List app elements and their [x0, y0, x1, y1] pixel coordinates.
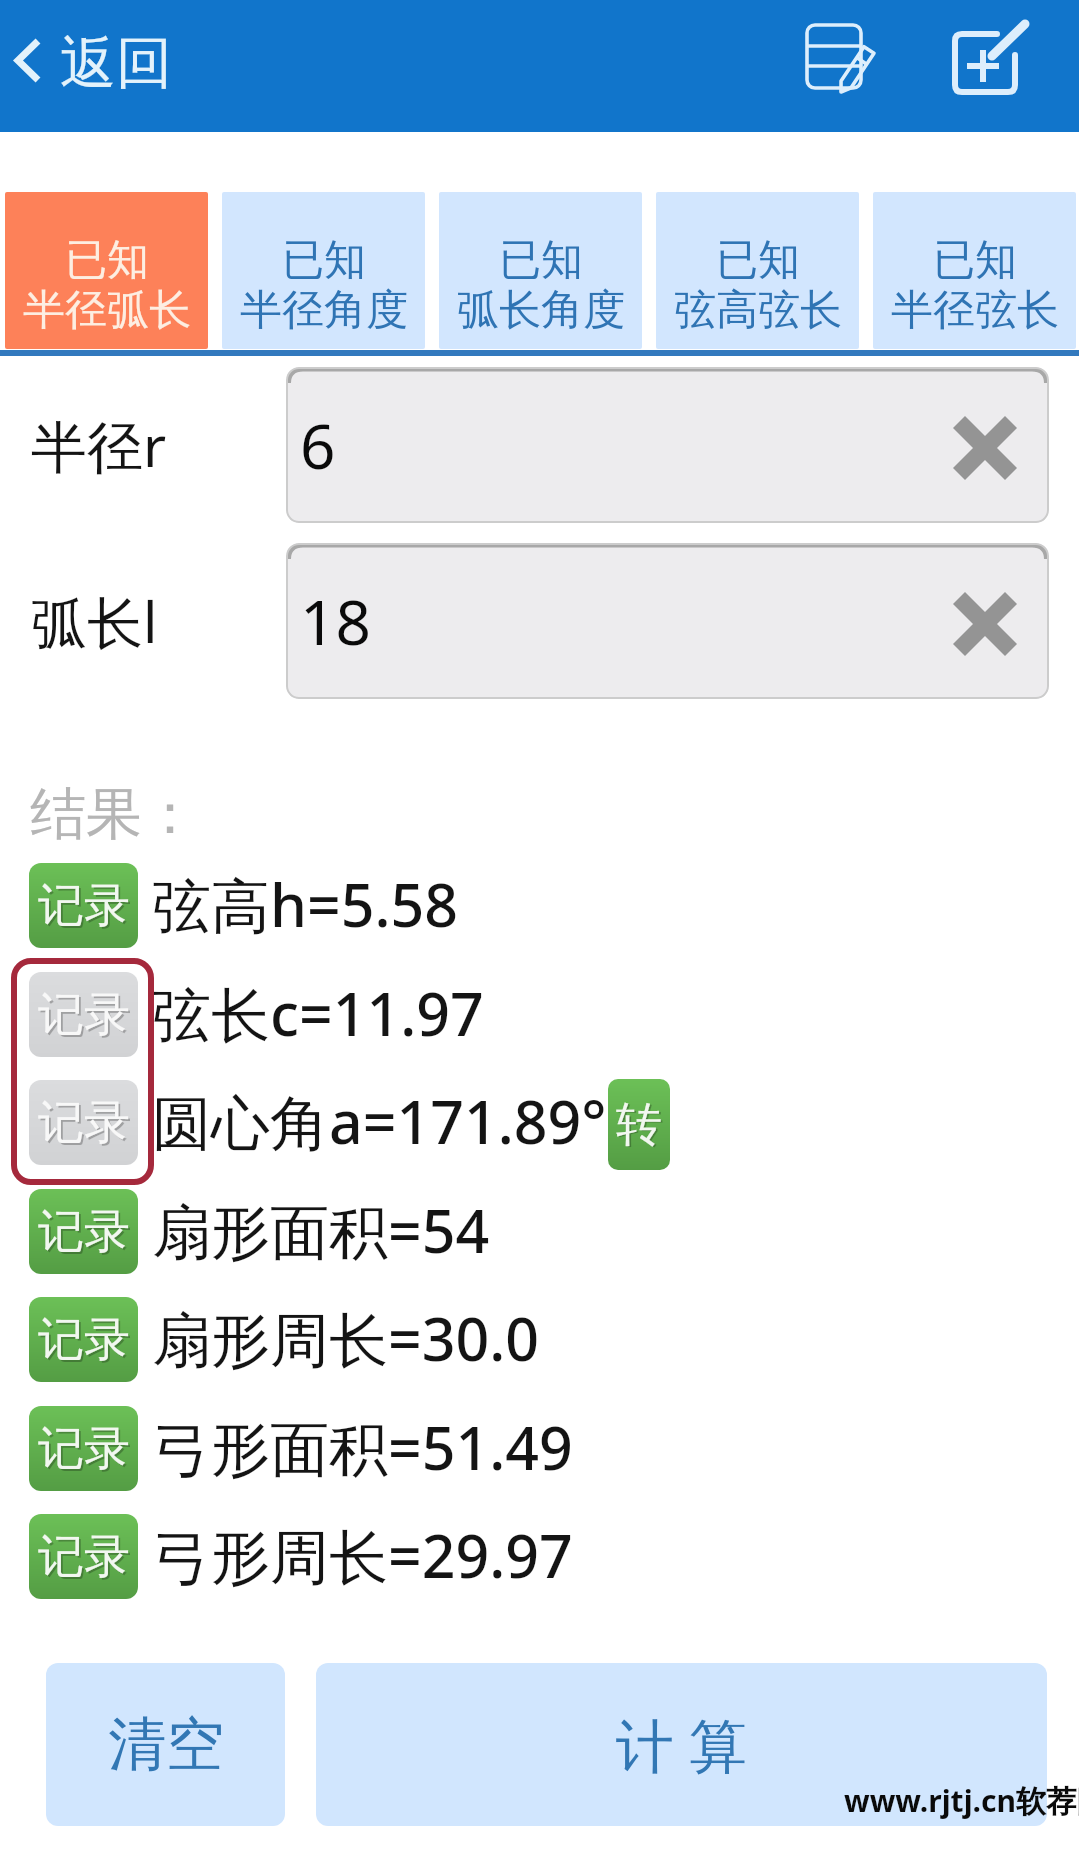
- staticText: 记录: [40, 1422, 132, 1480]
- staticText: 记录: [40, 1530, 132, 1588]
- staticText: 记录: [38, 1528, 130, 1586]
- staticText: 18: [300, 579, 371, 663]
- button[interactable]: 已知 半径角度: [222, 192, 425, 349]
- button[interactable]: 已知 弧长角度: [439, 192, 642, 349]
- staticText: 记录: [38, 877, 130, 935]
- button[interactable]: 已知 半径弧长: [5, 192, 208, 349]
- button[interactable]: 转: [608, 1079, 670, 1170]
- button[interactable]: 记录: [29, 1406, 138, 1491]
- button[interactable]: 已知 弦高弦长: [656, 192, 859, 349]
- button[interactable]: 清空: [46, 1663, 285, 1826]
- staticText: 已知 弦高弦长: [674, 234, 842, 337]
- staticText: 记录: [38, 1094, 130, 1152]
- staticText: 已知 弧长角度: [457, 234, 625, 337]
- staticText: 弧长l: [31, 583, 158, 659]
- staticText: 计 算: [616, 1705, 748, 1784]
- staticText: 记录: [40, 1205, 132, 1263]
- staticText: 返回: [60, 28, 172, 99]
- staticText: 扇形面积=54: [152, 1190, 490, 1271]
- button[interactable]: 6: [286, 367, 1049, 523]
- staticText: 记录: [40, 988, 132, 1046]
- staticText: 记录: [38, 986, 130, 1044]
- button[interactable]: 记录: [29, 972, 138, 1057]
- button[interactable]: 记录: [29, 863, 138, 948]
- button[interactable]: 记录: [29, 1189, 138, 1274]
- staticText: 结果：: [30, 779, 198, 850]
- staticText: 6: [300, 403, 336, 487]
- staticText: www.rjtj.cn软荐网: [844, 1780, 1079, 1821]
- staticText: 已知 半径弦长: [891, 234, 1059, 337]
- staticText: 清空: [108, 1708, 224, 1781]
- button[interactable]: 记录: [29, 1297, 138, 1382]
- staticText: 记录: [38, 1420, 130, 1478]
- staticText: 扇形周长=30.0: [152, 1298, 540, 1379]
- staticText: 弦高h=5.58: [152, 864, 459, 945]
- button[interactable]: Edit notes: [786, 8, 886, 124]
- staticText: 记录: [40, 1096, 132, 1154]
- staticText: 弓形周长=29.97: [152, 1515, 573, 1596]
- button[interactable]: 记录: [29, 1080, 138, 1165]
- button[interactable]: Clear: [947, 586, 1023, 662]
- button[interactable]: 记录: [29, 1514, 138, 1599]
- button[interactable]: 返回: [0, 17, 196, 116]
- staticText: 转: [616, 1096, 662, 1154]
- button[interactable]: New note: [936, 8, 1040, 124]
- button[interactable]: 已知 半径弦长: [873, 192, 1076, 349]
- staticText: 弓形面积=51.49: [152, 1407, 573, 1488]
- button[interactable]: 18: [286, 543, 1049, 699]
- staticText: 记录: [40, 879, 132, 937]
- staticText: 记录: [40, 1313, 132, 1371]
- staticText: 已知 半径角度: [240, 234, 408, 337]
- staticText: 半径r: [31, 407, 167, 483]
- staticText: 圆心角a=171.89°: [152, 1081, 607, 1162]
- staticText: 已知 半径弧长: [23, 234, 191, 337]
- staticText: 弦长c=11.97: [152, 973, 484, 1054]
- staticText: 记录: [38, 1311, 130, 1369]
- staticText: 转: [618, 1097, 664, 1155]
- button[interactable]: 计 算: [316, 1663, 1047, 1826]
- staticText: 记录: [38, 1203, 130, 1261]
- button[interactable]: Clear: [947, 410, 1023, 486]
